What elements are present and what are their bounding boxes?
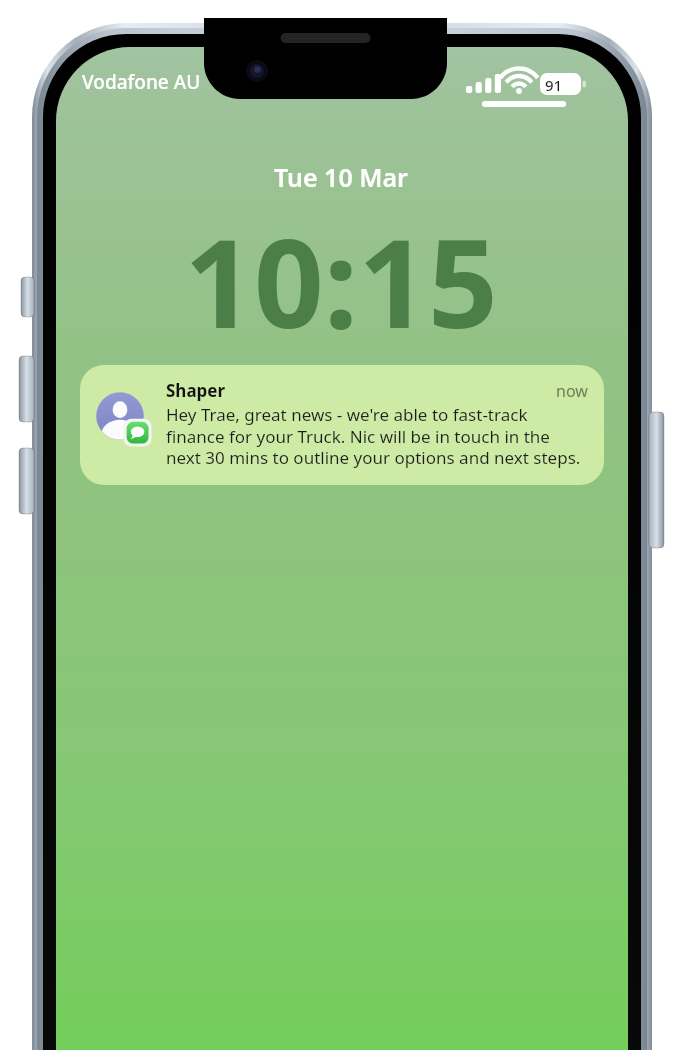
button[interactable]: Contact avatar, Messages [80,365,604,485]
staticText: Vodafone AU [82,69,201,95]
staticText: 10:15 [184,198,498,364]
staticText: Shaper [166,379,226,402]
staticText: 91 [545,75,563,95]
staticText: now [556,380,588,402]
staticText: Tue 10 Mar [274,160,408,194]
staticText: Hey Trae, great news - we're able to fas… [166,403,588,469]
other: Contact avatar, Messages [94,391,152,449]
